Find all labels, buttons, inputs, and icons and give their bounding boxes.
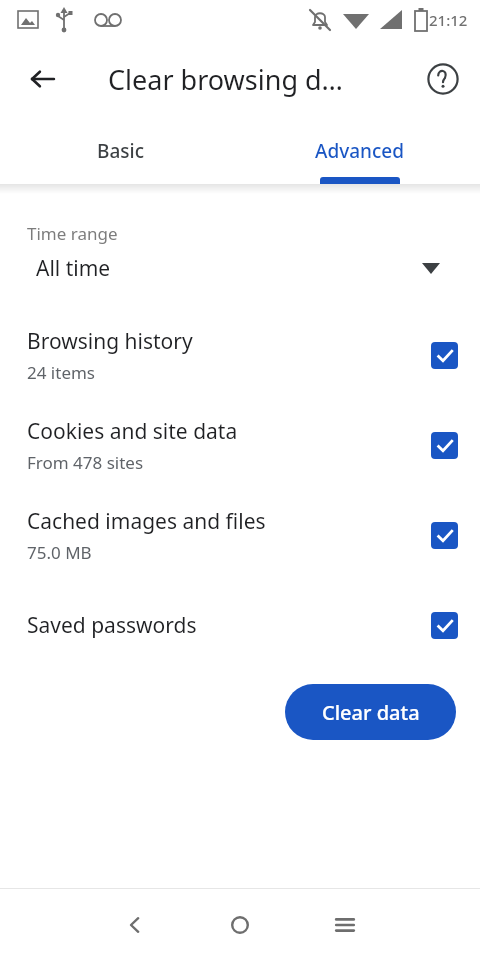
staticText: Clear browsing d… bbox=[108, 61, 343, 98]
staticText: 21:12 bbox=[429, 10, 468, 30]
button[interactable]: Back bbox=[111, 901, 159, 949]
button[interactable]: Saved passwords checkbox bbox=[431, 612, 458, 639]
staticText: All time bbox=[36, 254, 111, 283]
button[interactable]: Advanced bbox=[240, 118, 480, 184]
staticText: Cookies and site data bbox=[27, 417, 238, 446]
button[interactable]: Browsing history checkbox bbox=[431, 342, 458, 369]
staticText: 24 items bbox=[27, 361, 96, 384]
button[interactable]: Cached images and files bbox=[0, 504, 480, 566]
button[interactable]: Back bbox=[19, 55, 67, 103]
button[interactable]: Saved passwords bbox=[0, 594, 480, 656]
staticText: Basic bbox=[97, 138, 144, 164]
button[interactable]: Basic bbox=[0, 118, 240, 184]
button[interactable]: Help bbox=[419, 55, 467, 103]
button[interactable]: Home bbox=[216, 901, 264, 949]
staticText: Saved passwords bbox=[27, 611, 197, 640]
button[interactable]: Cookies and site data checkbox bbox=[431, 432, 458, 459]
button[interactable]: Cookies and site data bbox=[0, 414, 480, 476]
button[interactable]: Recent apps bbox=[321, 901, 369, 949]
button[interactable]: Cached images and files checkbox bbox=[431, 522, 458, 549]
staticText: Time range bbox=[27, 222, 118, 245]
staticText: Cached images and files bbox=[27, 507, 266, 536]
staticText: Advanced bbox=[315, 138, 405, 164]
staticText: From 478 sites bbox=[27, 451, 144, 474]
staticText: Browsing history bbox=[27, 327, 193, 356]
button[interactable]: Clear data bbox=[285, 684, 456, 740]
button[interactable]: Time range bbox=[0, 206, 480, 286]
button[interactable]: Browsing history bbox=[0, 324, 480, 386]
staticText: 75.0 MB bbox=[27, 541, 92, 564]
staticText: Clear data bbox=[322, 699, 420, 726]
